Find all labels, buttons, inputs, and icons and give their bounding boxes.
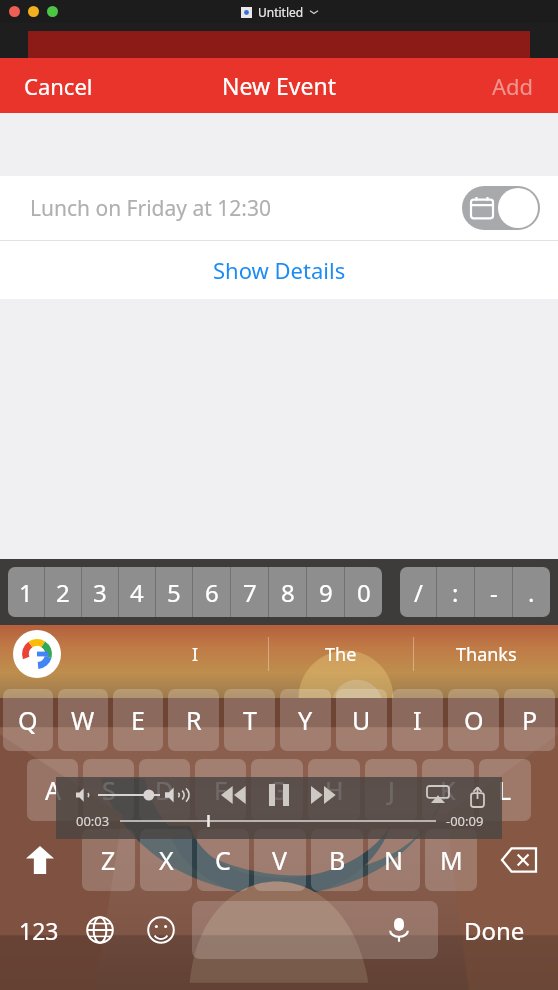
button[interactable]: T: [224, 689, 275, 751]
button[interactable]: P: [504, 689, 555, 751]
staticText: U: [352, 703, 371, 737]
staticText: New Event: [222, 70, 337, 101]
button[interactable]: Change language: [70, 899, 130, 961]
button[interactable]: 0: [345, 567, 382, 617]
button[interactable]: Thanks: [414, 625, 558, 683]
button[interactable]: I: [392, 689, 443, 751]
staticText: D: [155, 773, 174, 807]
staticText: R: [186, 703, 202, 737]
button[interactable]: O: [448, 689, 499, 751]
button[interactable]: 3: [82, 567, 118, 617]
staticText: S: [102, 773, 116, 807]
staticText: A: [45, 773, 61, 807]
button[interactable]: J: [365, 759, 417, 821]
button[interactable]: 7: [231, 567, 268, 617]
button[interactable]: :: [437, 567, 474, 617]
button[interactable]: Cancel: [0, 58, 117, 113]
staticText: Lunch on Friday at 12:30: [30, 194, 271, 223]
staticText: 5: [167, 576, 181, 609]
button[interactable]: M: [425, 829, 477, 891]
button[interactable]: 4: [119, 567, 155, 617]
staticText: I: [192, 642, 199, 667]
staticText: 0: [357, 576, 371, 609]
button[interactable]: Show Details: [0, 241, 558, 299]
staticText: Add: [492, 71, 534, 101]
staticText: J: [388, 773, 395, 807]
button[interactable]: Emoji: [130, 899, 192, 961]
staticText: The: [325, 642, 357, 667]
button[interactable]: G: [251, 759, 303, 821]
button[interactable]: B: [311, 829, 363, 891]
staticText: L: [498, 773, 512, 807]
button[interactable]: .: [513, 567, 550, 617]
button[interactable]: F: [195, 759, 246, 821]
staticText: 7: [243, 576, 257, 609]
staticText: P: [522, 703, 538, 737]
button[interactable]: Pause: [269, 784, 289, 806]
button[interactable]: Y: [280, 689, 331, 751]
staticText: V: [272, 843, 288, 877]
button[interactable]: Backspace: [482, 829, 555, 891]
button[interactable]: Add: [468, 58, 558, 113]
button[interactable]: Toggle calendar: [462, 186, 540, 230]
button[interactable]: Share: [469, 786, 486, 807]
button[interactable]: Rewind: [221, 786, 247, 804]
staticText: H: [325, 773, 344, 807]
button[interactable]: -: [475, 567, 512, 617]
staticText: O: [464, 703, 484, 737]
button[interactable]: [9, 6, 20, 17]
staticText: M: [440, 843, 463, 877]
button[interactable]: 2: [45, 567, 81, 617]
button[interactable]: 5: [156, 567, 192, 617]
button[interactable]: E: [113, 689, 163, 751]
button[interactable]: C: [197, 829, 249, 891]
staticText: 4: [130, 576, 144, 609]
button[interactable]: Lunch on Friday at 12:30: [0, 176, 558, 240]
staticText: G: [268, 773, 287, 807]
button[interactable]: R: [168, 689, 219, 751]
button[interactable]: K: [422, 759, 474, 821]
button[interactable]: D: [139, 759, 190, 821]
button[interactable]: H: [308, 759, 360, 821]
staticText: Cancel: [24, 71, 93, 101]
button[interactable]: 123: [8, 899, 70, 961]
button[interactable]: S: [83, 759, 134, 821]
staticText: F: [214, 773, 227, 807]
button[interactable]: [28, 6, 39, 17]
staticText: Y: [298, 703, 313, 737]
button[interactable]: V: [254, 829, 306, 891]
button[interactable]: L: [479, 759, 531, 821]
button[interactable]: I: [123, 625, 268, 683]
staticText: E: [131, 703, 145, 737]
staticText: X: [159, 843, 174, 877]
button[interactable]: U: [336, 689, 387, 751]
staticText: 1: [19, 576, 33, 609]
button[interactable]: 8: [269, 567, 306, 617]
button[interactable]: X: [140, 829, 192, 891]
button[interactable]: Shift: [3, 829, 77, 891]
button[interactable]: The: [269, 625, 413, 683]
button[interactable]: Done: [438, 899, 550, 961]
button[interactable]: AirPlay: [427, 786, 449, 803]
button[interactable]: N: [368, 829, 420, 891]
button[interactable]: Fast forward: [311, 786, 337, 804]
staticText: 2: [56, 576, 70, 609]
staticText: N: [384, 843, 404, 877]
button[interactable]: Space: [192, 901, 438, 959]
button[interactable]: Google: [13, 630, 61, 678]
staticText: C: [215, 843, 231, 877]
button[interactable]: W: [58, 689, 108, 751]
button[interactable]: [47, 6, 58, 17]
staticText: I: [413, 703, 422, 737]
staticText: Done: [464, 914, 525, 947]
staticText: .: [528, 576, 535, 609]
button[interactable]: Z: [82, 829, 135, 891]
button[interactable]: /: [400, 567, 436, 617]
button[interactable]: 6: [193, 567, 230, 617]
button[interactable]: 9: [307, 567, 344, 617]
button[interactable]: A: [27, 759, 78, 821]
button[interactable]: 1: [8, 567, 44, 617]
staticText: Show Details: [213, 255, 346, 285]
button[interactable]: Q: [3, 689, 53, 751]
staticText: -: [490, 576, 498, 609]
